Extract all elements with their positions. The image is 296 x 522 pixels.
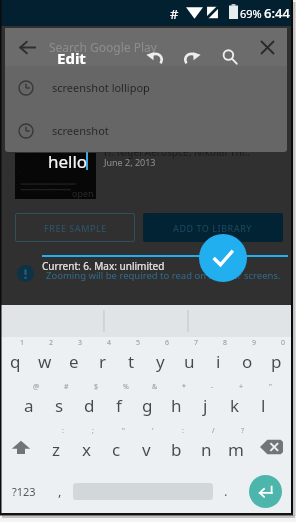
button[interactable]: ?123 [1, 469, 47, 513]
button[interactable]: Back [5, 28, 49, 66]
button[interactable]: 9 [233, 337, 262, 381]
staticText: y [156, 350, 165, 373]
staticText: 7 [194, 338, 199, 348]
button[interactable]: 4 [88, 337, 117, 381]
button[interactable]: 0 [262, 337, 291, 381]
staticText: 3 [78, 338, 83, 348]
staticText: i [216, 350, 221, 373]
button[interactable]: 2 [30, 337, 59, 381]
staticText: ?123 [12, 484, 36, 499]
staticText: n [201, 438, 212, 461]
staticText: Edit [57, 48, 86, 68]
staticText: g [142, 394, 153, 417]
staticText: 9 [252, 338, 257, 348]
staticText: Current: 6. Max: unlimited [42, 259, 165, 273]
staticText: . [224, 482, 228, 500]
button[interactable]: . [213, 469, 239, 513]
staticText: 0 [281, 338, 286, 348]
button[interactable]: screenshot [5, 109, 287, 152]
staticText: Zooming will be required to read on smal… [46, 269, 281, 282]
staticText: $ [94, 382, 99, 392]
button[interactable]: : [161, 425, 191, 469]
staticText: hello [48, 150, 88, 173]
staticText: u [184, 350, 195, 373]
staticText: % [123, 382, 129, 392]
staticText: ; [92, 426, 94, 436]
staticText: - [211, 382, 214, 392]
button[interactable]: ? [221, 425, 251, 469]
staticText: ADD TO LIBRARY [173, 222, 253, 234]
button[interactable]: Done [199, 234, 247, 282]
button[interactable]: & [133, 381, 162, 425]
button[interactable]: " [101, 425, 131, 469]
button[interactable]: , [47, 469, 73, 513]
button[interactable]: 6 [146, 337, 175, 381]
staticText: p [271, 350, 282, 373]
button[interactable]: Enter [249, 475, 282, 508]
button[interactable]: Shift [1, 425, 41, 469]
button[interactable]: + [220, 381, 249, 425]
staticText: : [182, 426, 184, 436]
staticText: a [24, 394, 34, 417]
button[interactable]: * [162, 381, 191, 425]
staticText: r [99, 350, 107, 373]
staticText: k [230, 394, 240, 417]
staticText: " [269, 382, 272, 392]
staticText: FREE SAMPLE [44, 222, 107, 234]
staticText: : [62, 426, 64, 436]
staticText: v [142, 438, 151, 461]
staticText: m [228, 438, 244, 461]
button[interactable]: Redo [173, 38, 211, 76]
staticText: f [116, 394, 122, 417]
staticText: b [171, 438, 182, 461]
staticText: t [128, 350, 135, 373]
staticText: / [212, 426, 215, 436]
button[interactable]: 5 [117, 337, 146, 381]
button[interactable]: / [191, 425, 221, 469]
button[interactable]: FREE SAMPLE [15, 213, 135, 242]
button[interactable]: # [44, 381, 74, 425]
staticText: screenshot lollipop [52, 80, 150, 95]
staticText: x [82, 438, 91, 461]
staticText: ' [152, 426, 154, 436]
button[interactable]: 7 [175, 337, 204, 381]
staticText: e [69, 350, 79, 373]
button[interactable]: 8 [204, 337, 233, 381]
staticText: 8 [223, 338, 228, 348]
staticText: l [261, 394, 266, 417]
button[interactable]: @ [14, 381, 44, 425]
staticText: H. Nigel Aerospce, Nikolai Thi.. [104, 145, 250, 159]
staticText: open [72, 187, 94, 199]
staticText: o [242, 350, 253, 373]
button[interactable]: 1 [1, 337, 30, 381]
staticText: June 2, 2013 [104, 156, 156, 168]
button[interactable]: screenshot lollipop [5, 66, 287, 109]
staticText: Search Google Play [49, 39, 157, 55]
button[interactable]: ' [131, 425, 161, 469]
button[interactable]: Backspace [251, 425, 291, 469]
staticText: 69% [240, 6, 262, 21]
button[interactable]: ; [71, 425, 101, 469]
staticText: @ [33, 382, 40, 392]
button[interactable]: $ [74, 381, 104, 425]
button[interactable]: Undo [135, 38, 173, 76]
staticText: ? [241, 426, 245, 436]
staticText: # [64, 382, 69, 392]
button[interactable]: " [249, 381, 278, 425]
button[interactable]: : [41, 425, 71, 469]
staticText: & [152, 382, 158, 392]
staticText: z [52, 438, 60, 461]
staticText: + [239, 382, 244, 392]
button[interactable]: ADD TO LIBRARY [143, 213, 283, 242]
staticText: 6 [165, 338, 170, 348]
staticText: , [58, 482, 62, 500]
button[interactable]: Close [247, 28, 287, 66]
button[interactable]: Search [211, 38, 249, 76]
staticText: " [122, 426, 125, 436]
staticText: d [84, 394, 95, 417]
staticText: screenshot [52, 123, 109, 138]
button[interactable]: 3 [59, 337, 88, 381]
button[interactable]: % [104, 381, 133, 425]
button[interactable]: - [191, 381, 220, 425]
